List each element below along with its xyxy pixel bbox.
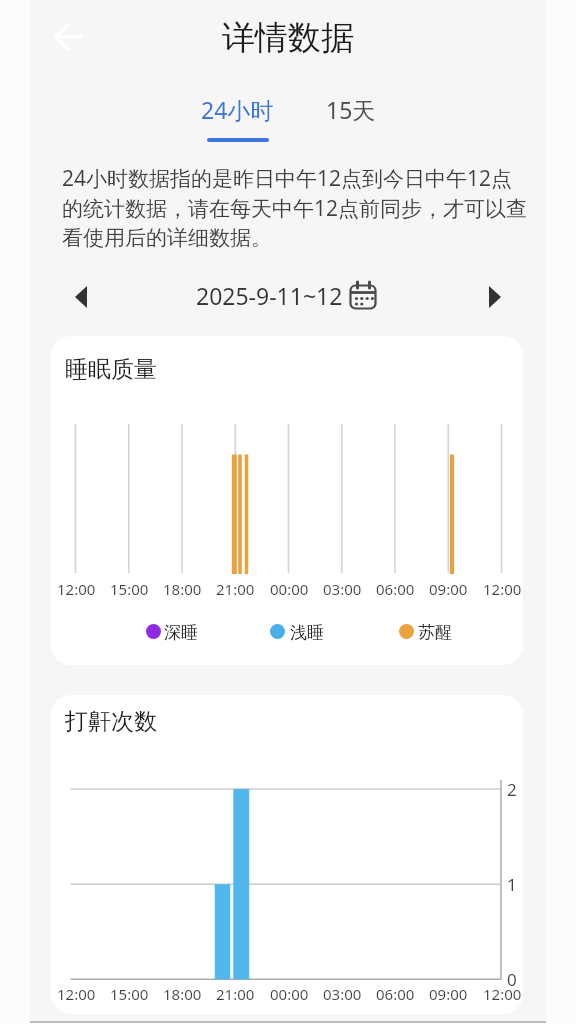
staticText: 00:00 — [270, 579, 309, 599]
staticText: 2 — [507, 778, 517, 800]
staticText: 0 — [507, 968, 517, 990]
staticText: 12:00 — [57, 579, 96, 599]
staticText: 12:00 — [483, 579, 522, 599]
staticText: 24小时 — [201, 94, 274, 125]
staticText: 03:00 — [323, 984, 362, 1004]
staticText: 24小时数据指的是昨日中午12点到今日中午12点 的统计数据，请在每天中午12点… — [62, 164, 528, 252]
staticText: 21:00 — [216, 579, 255, 599]
staticText: 浅睡 — [290, 622, 324, 643]
staticText: 18:00 — [163, 984, 202, 1004]
staticText: 12:00 — [57, 984, 96, 1004]
button[interactable] — [481, 285, 509, 311]
button[interactable]: 2025-9-11~12 — [196, 276, 377, 314]
staticText: 15:00 — [110, 579, 149, 599]
staticText: 2025-9-11~12 — [196, 280, 343, 311]
staticText: 06:00 — [376, 579, 415, 599]
staticText: 深睡 — [164, 622, 198, 643]
staticText: 15:00 — [110, 984, 149, 1004]
button[interactable]: 15天 — [326, 91, 376, 142]
staticText: 21:00 — [216, 984, 255, 1004]
staticText: 睡眠质量 — [65, 355, 157, 384]
staticText: 详情数据 — [222, 17, 354, 59]
staticText: 12:00 — [483, 984, 522, 1004]
button[interactable]: 24小时 — [201, 91, 274, 142]
staticText: 00:00 — [270, 984, 309, 1004]
button[interactable] — [67, 285, 95, 311]
staticText: 苏醒 — [418, 622, 452, 643]
staticText: 15天 — [326, 94, 376, 125]
staticText: 18:00 — [163, 579, 202, 599]
staticText: 06:00 — [376, 984, 415, 1004]
staticText: 09:00 — [429, 984, 468, 1004]
staticText: 1 — [507, 873, 517, 895]
staticText: 打鼾次数 — [65, 707, 157, 736]
staticText: 09:00 — [429, 579, 468, 599]
staticText: 03:00 — [323, 579, 362, 599]
